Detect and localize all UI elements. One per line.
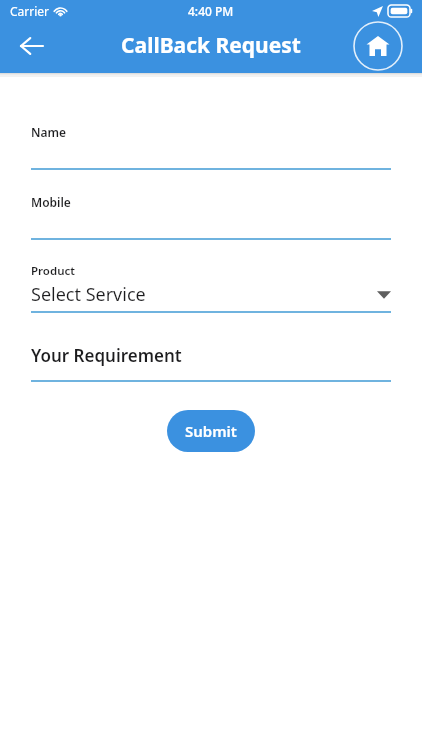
button[interactable]: Submit	[167, 410, 255, 452]
staticText: Product	[31, 263, 75, 279]
staticText: Mobile	[31, 194, 71, 210]
staticText: CallBack Request	[0, 31, 422, 60]
staticText: Name	[31, 124, 67, 140]
staticText: Submit	[185, 421, 237, 441]
button[interactable]: Product	[31, 263, 391, 307]
button[interactable]: Back	[12, 26, 52, 66]
staticText: Carrier	[10, 3, 50, 19]
button[interactable]: Home	[353, 21, 403, 71]
staticText: Your Requirement	[31, 344, 182, 367]
staticText: 4:40 PM	[188, 3, 234, 19]
staticText: Select Service	[31, 282, 146, 307]
